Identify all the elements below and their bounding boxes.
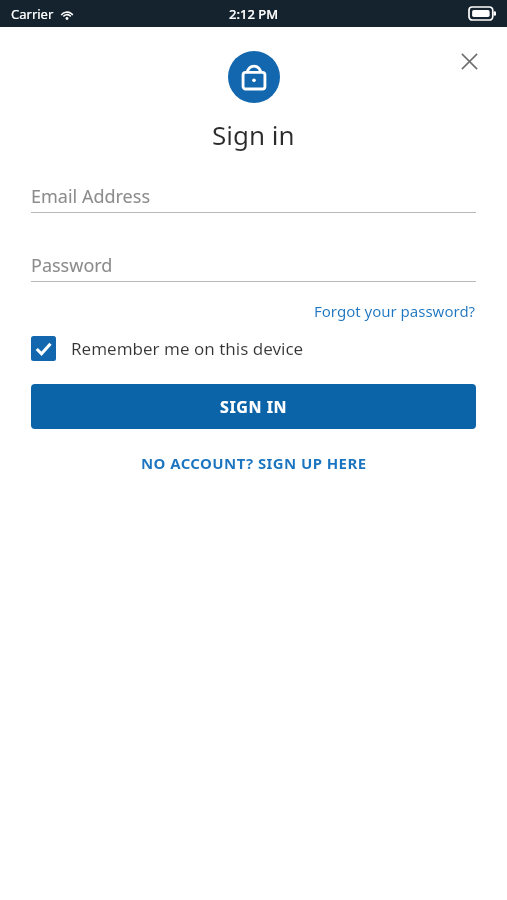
button[interactable]: SIGN IN [31,384,476,429]
staticText: SIGN IN [220,396,288,418]
staticText: Email Address [31,184,151,209]
button[interactable]: Password [31,249,476,282]
staticText: Password [31,253,113,278]
button[interactable]: Forgot your password? [314,298,476,324]
staticText: Forgot your password? [314,301,476,321]
staticText: NO ACCOUNT? SIGN UP HERE [141,453,367,473]
staticText: 2:12 PM [229,5,279,23]
button[interactable]: NO ACCOUNT? SIGN UP HERE [133,448,375,478]
staticText: Sign in [212,117,295,152]
staticText: Remember me on this device [71,337,304,360]
button[interactable]: Close [449,41,489,81]
button[interactable]: Email Address [31,180,476,213]
button[interactable]: Remember me on this device [31,336,476,361]
staticText: Carrier [11,5,54,23]
